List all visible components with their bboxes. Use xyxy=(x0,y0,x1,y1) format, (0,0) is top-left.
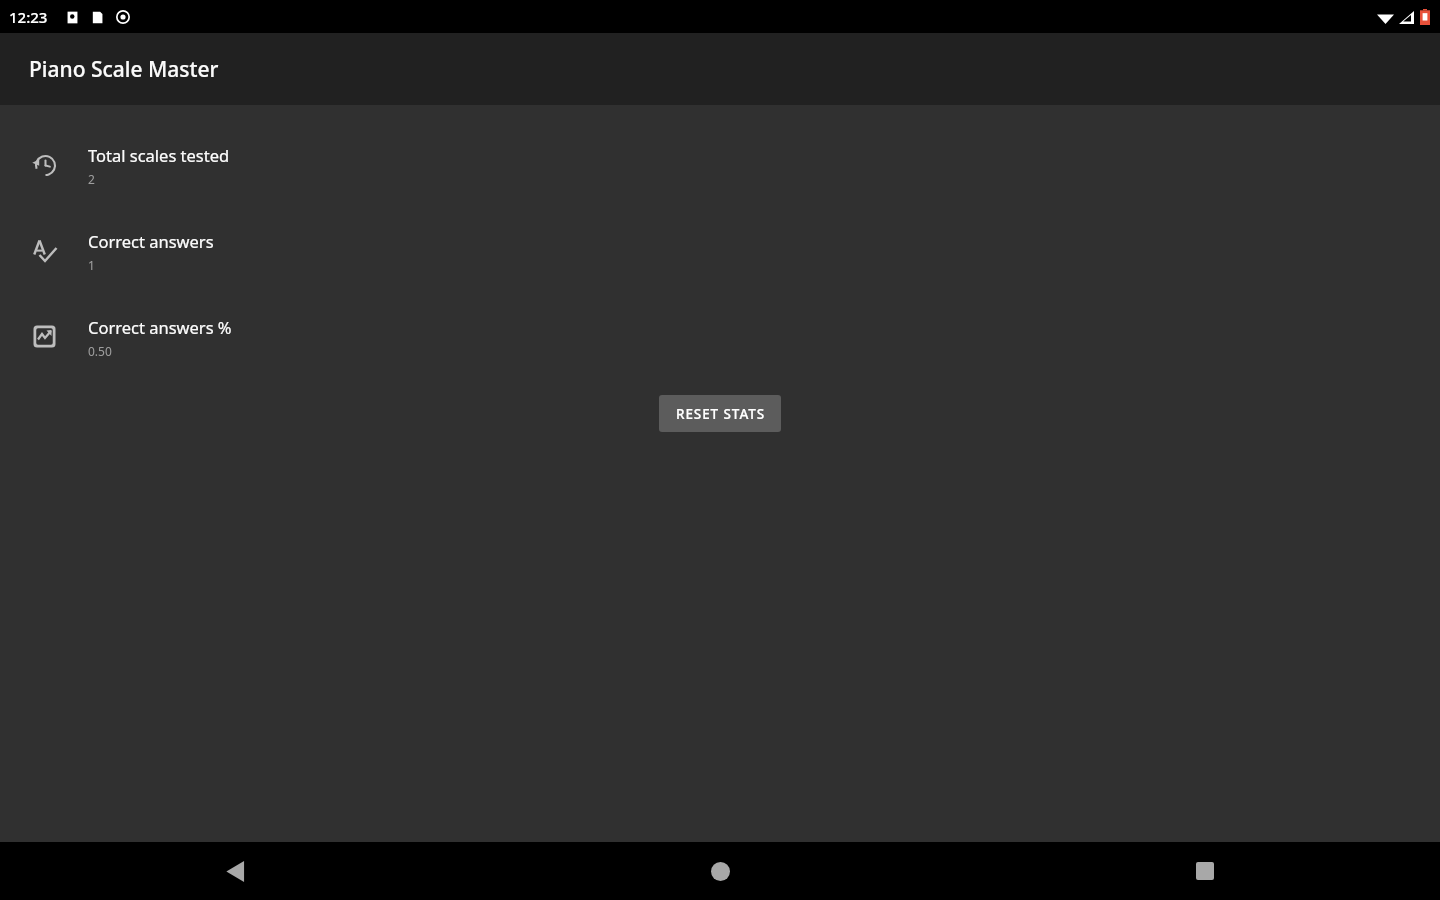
staticText: Piano Scale Master xyxy=(29,55,219,84)
staticText: 1 xyxy=(88,257,95,273)
staticText: Correct answers xyxy=(88,230,214,252)
other: Chart xyxy=(0,324,88,349)
button[interactable]: Chart xyxy=(0,293,1440,379)
staticText: Total scales tested xyxy=(88,144,230,166)
button[interactable]: RESET STATS xyxy=(659,395,781,432)
button[interactable]: Home xyxy=(480,842,960,900)
button[interactable]: Back xyxy=(0,842,480,900)
staticText: 0.50 xyxy=(88,343,112,359)
button[interactable]: History xyxy=(0,121,1440,207)
staticText: 12:23 xyxy=(9,7,48,27)
staticText: 2 xyxy=(88,171,95,187)
other: History xyxy=(0,152,88,177)
button[interactable]: Spellcheck xyxy=(0,207,1440,293)
button[interactable]: Recent apps xyxy=(960,842,1440,900)
other: Spellcheck xyxy=(0,238,88,263)
staticText: RESET STATS xyxy=(676,405,765,423)
staticText: Correct answers % xyxy=(88,316,232,338)
